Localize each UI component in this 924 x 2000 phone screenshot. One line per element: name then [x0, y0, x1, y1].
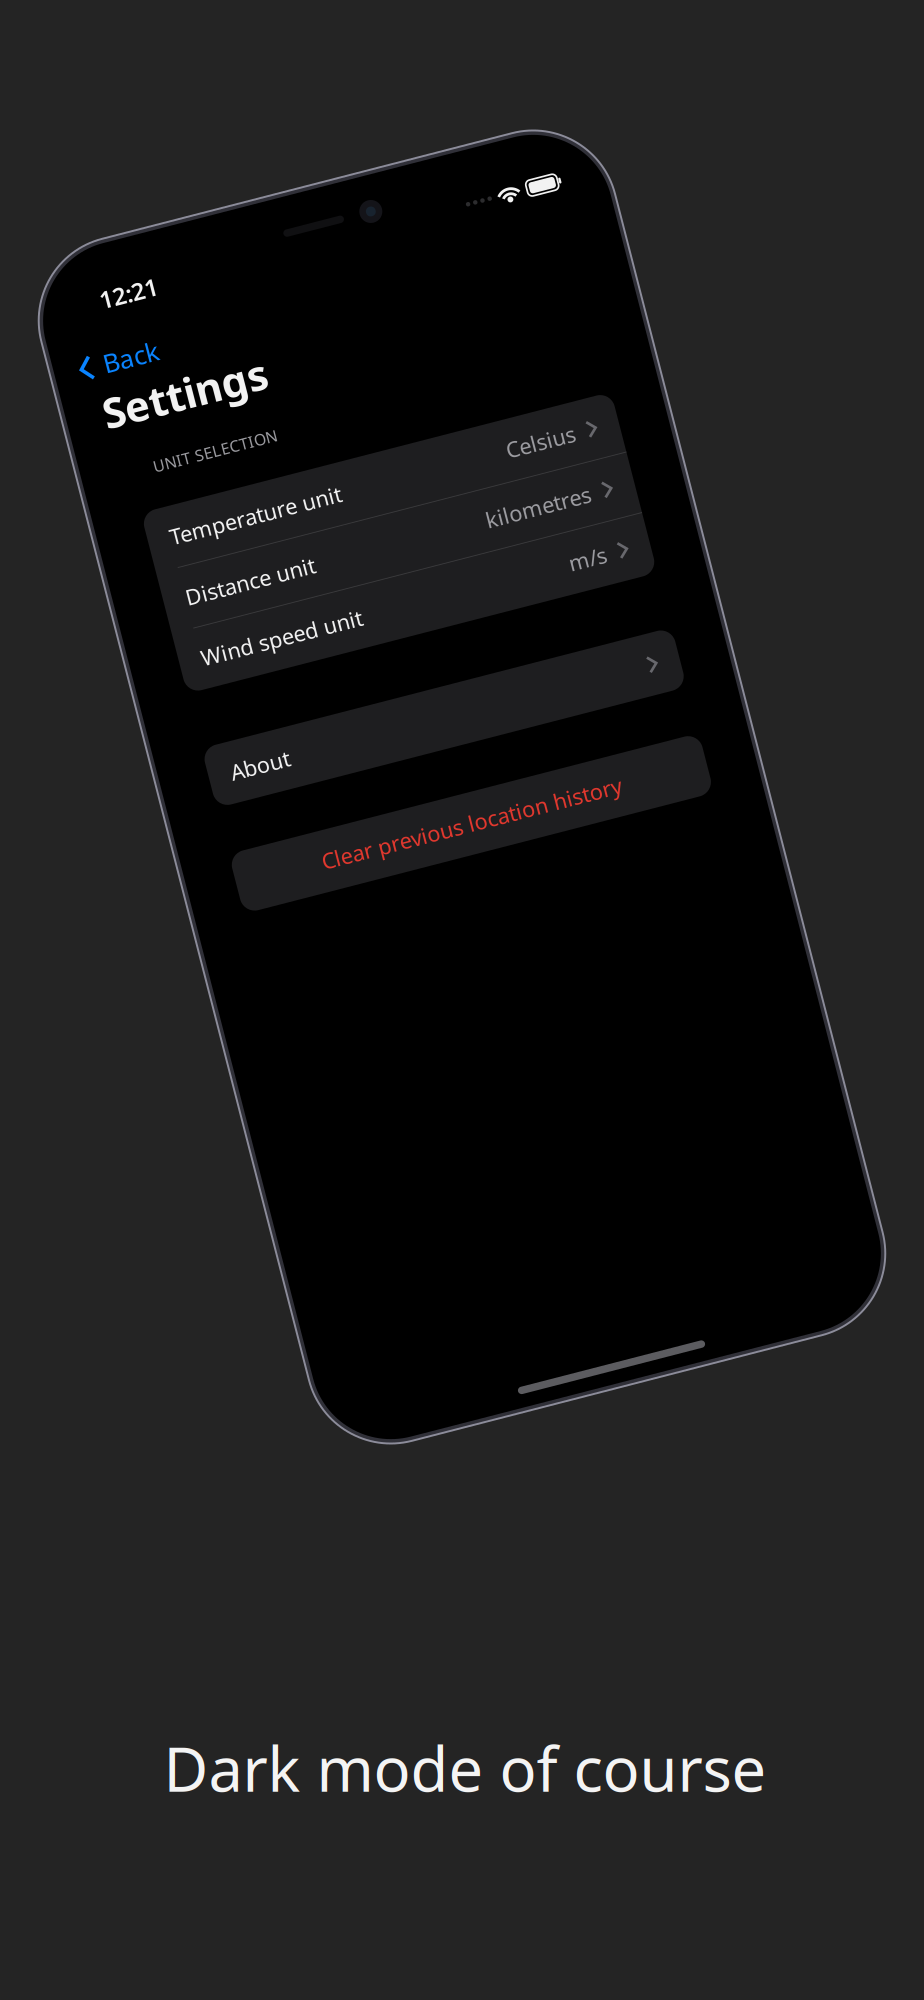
button[interactable]: Temperature unit	[298, 554, 625, 596]
staticText: Clear previous location history	[358, 803, 566, 822]
staticText: m/s	[569, 650, 595, 669]
button[interactable]: Back	[265, 440, 354, 462]
button[interactable]: Distance unit	[298, 596, 625, 638]
staticText: Celsius	[547, 565, 595, 585]
staticText: Temperature unit	[313, 565, 432, 585]
staticText: Distance unit	[313, 607, 403, 627]
staticText: Wind speed unit	[313, 650, 425, 669]
staticText: UNIT SELECTION	[314, 519, 400, 533]
button[interactable]: Wind speed unit	[298, 638, 625, 680]
button[interactable]: Clear previous location history	[298, 791, 625, 833]
button[interactable]: About	[298, 718, 625, 759]
staticText: Settings	[290, 465, 404, 502]
staticText: Dark mode of course	[163, 1727, 766, 1809]
